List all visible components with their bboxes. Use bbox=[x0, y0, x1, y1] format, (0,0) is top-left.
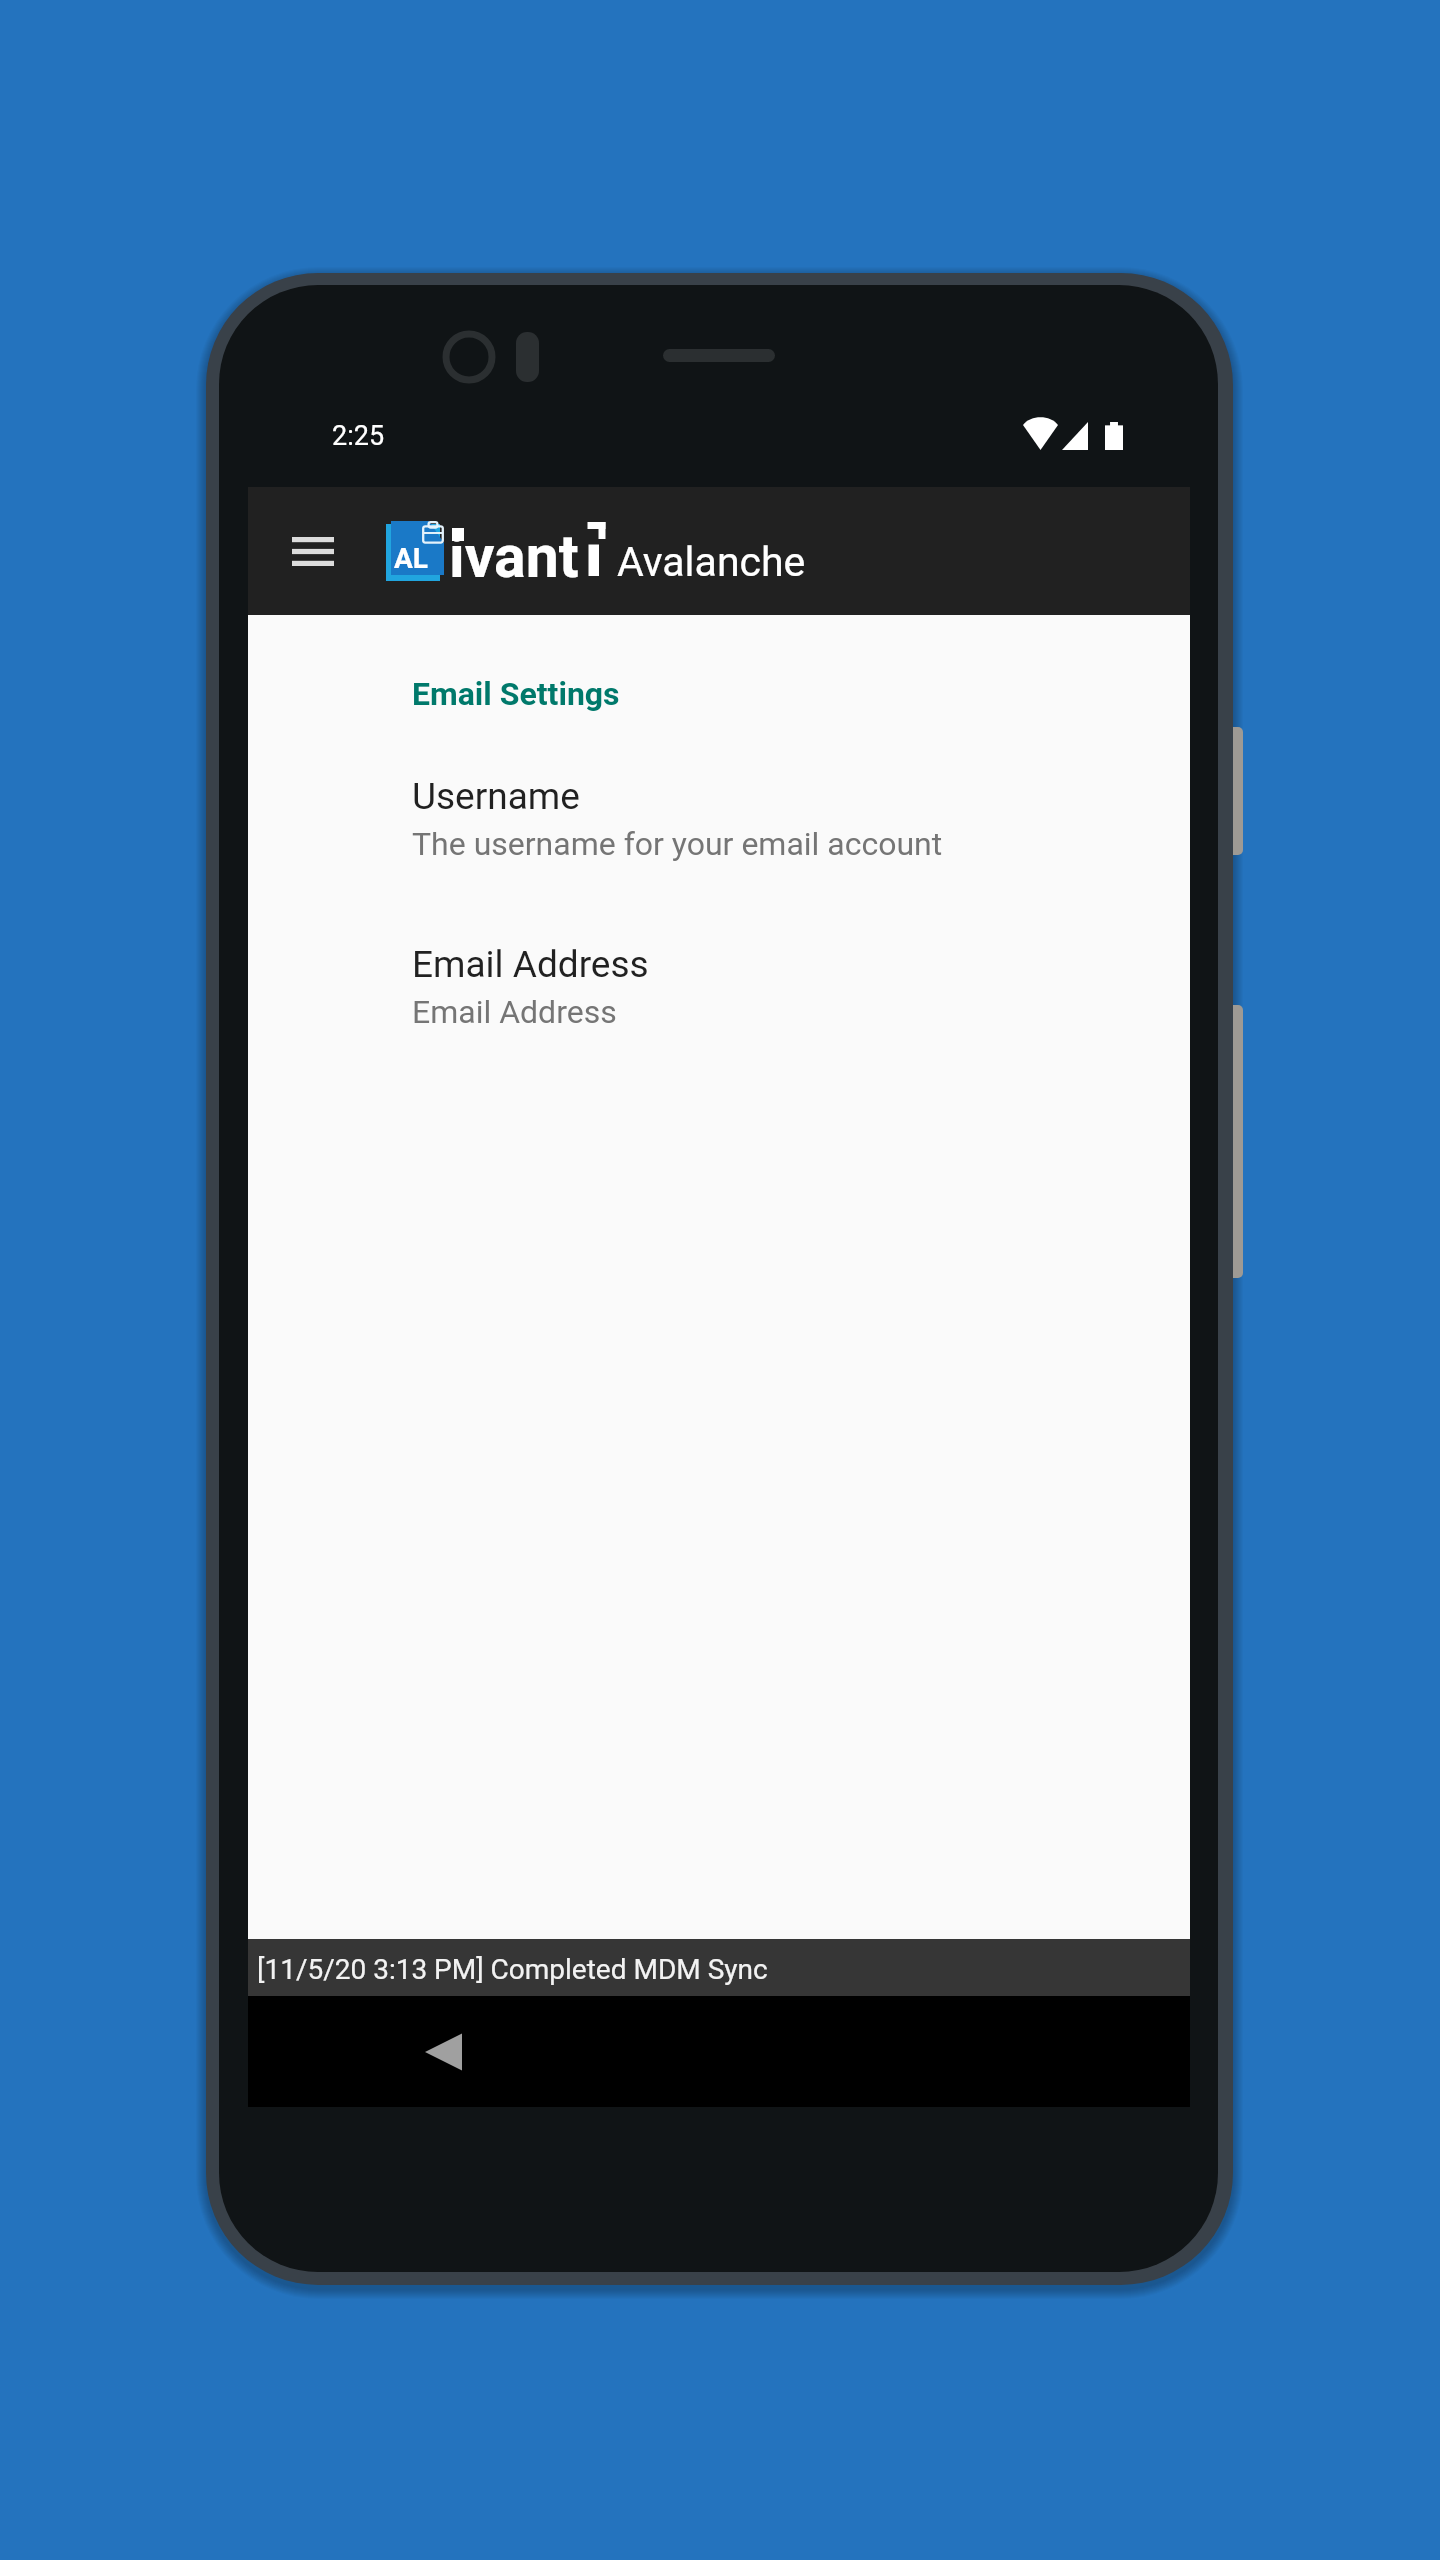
staticText: Email Settings bbox=[412, 675, 620, 713]
staticText: Avalanche bbox=[617, 538, 806, 586]
staticText: ivant bbox=[449, 522, 579, 591]
button[interactable]: Open navigation menu bbox=[272, 516, 354, 587]
button[interactable]: Username bbox=[248, 763, 1190, 881]
staticText: Username bbox=[412, 775, 580, 818]
staticText: [11/5/20 3:13 PM] Completed MDM Sync bbox=[257, 1953, 768, 1986]
staticText: The username for your email account bbox=[412, 825, 943, 863]
staticText: 2:25 bbox=[332, 420, 385, 452]
staticText: Email Address bbox=[412, 993, 617, 1031]
button[interactable]: Back bbox=[405, 2014, 481, 2090]
staticText: AL bbox=[394, 542, 429, 575]
staticText: Email Address bbox=[412, 943, 649, 986]
button[interactable]: Email Address bbox=[248, 931, 1190, 1049]
